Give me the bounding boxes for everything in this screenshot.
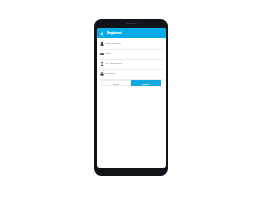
button[interactable]: Reset xyxy=(101,80,131,86)
staticText: No. Handphone xyxy=(105,62,122,65)
staticText: Reset xyxy=(113,82,120,85)
staticText: Registrasi xyxy=(107,31,122,35)
button[interactable]: Back xyxy=(97,29,107,38)
staticText: Daftar xyxy=(142,82,150,85)
staticText: Password xyxy=(105,72,116,75)
button[interactable]: Email xyxy=(100,50,163,59)
button[interactable]: No. Handphone xyxy=(100,60,163,69)
button[interactable]: Daftar xyxy=(131,80,161,86)
staticText: Email xyxy=(105,52,111,55)
staticText: Nama Lengkap xyxy=(105,42,121,45)
button[interactable]: Password xyxy=(100,70,163,79)
button[interactable]: Nama Lengkap xyxy=(100,40,163,49)
